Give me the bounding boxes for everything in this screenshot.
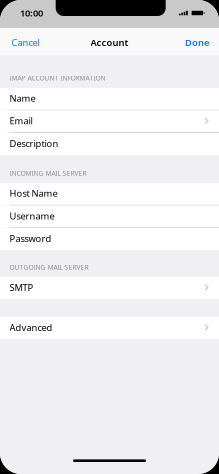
- staticText: SMTP: [9, 281, 33, 294]
- button[interactable]: Description: [0, 133, 219, 155]
- staticText: Password: [9, 232, 51, 245]
- staticText: 10:00: [20, 7, 43, 19]
- button[interactable]: Username: [0, 205, 219, 227]
- staticText: OUTGOING MAIL SERVER: [9, 263, 88, 272]
- staticText: Account: [90, 36, 128, 49]
- button[interactable]: Password: [0, 228, 219, 250]
- button[interactable]: Name: [0, 88, 219, 110]
- button[interactable]: Email: [0, 110, 219, 132]
- staticText: Host Name: [9, 187, 57, 199]
- staticText: Advanced: [9, 321, 52, 334]
- staticText: INCOMING MAIL SERVER: [9, 169, 86, 177]
- button[interactable]: SMTP: [0, 277, 219, 299]
- staticText: IMAP ACCOUNT INFORMATION: [9, 73, 105, 82]
- button[interactable]: Host Name: [0, 183, 219, 205]
- staticText: Done: [185, 36, 209, 49]
- staticText: Email: [9, 114, 32, 127]
- staticText: Description: [9, 137, 58, 149]
- staticText: Name: [9, 92, 35, 104]
- staticText: Cancel: [11, 36, 39, 49]
- button[interactable]: Done: [177, 29, 219, 56]
- button[interactable]: Cancel: [0, 29, 47, 56]
- staticText: Username: [9, 210, 54, 222]
- button[interactable]: Advanced: [0, 317, 219, 339]
